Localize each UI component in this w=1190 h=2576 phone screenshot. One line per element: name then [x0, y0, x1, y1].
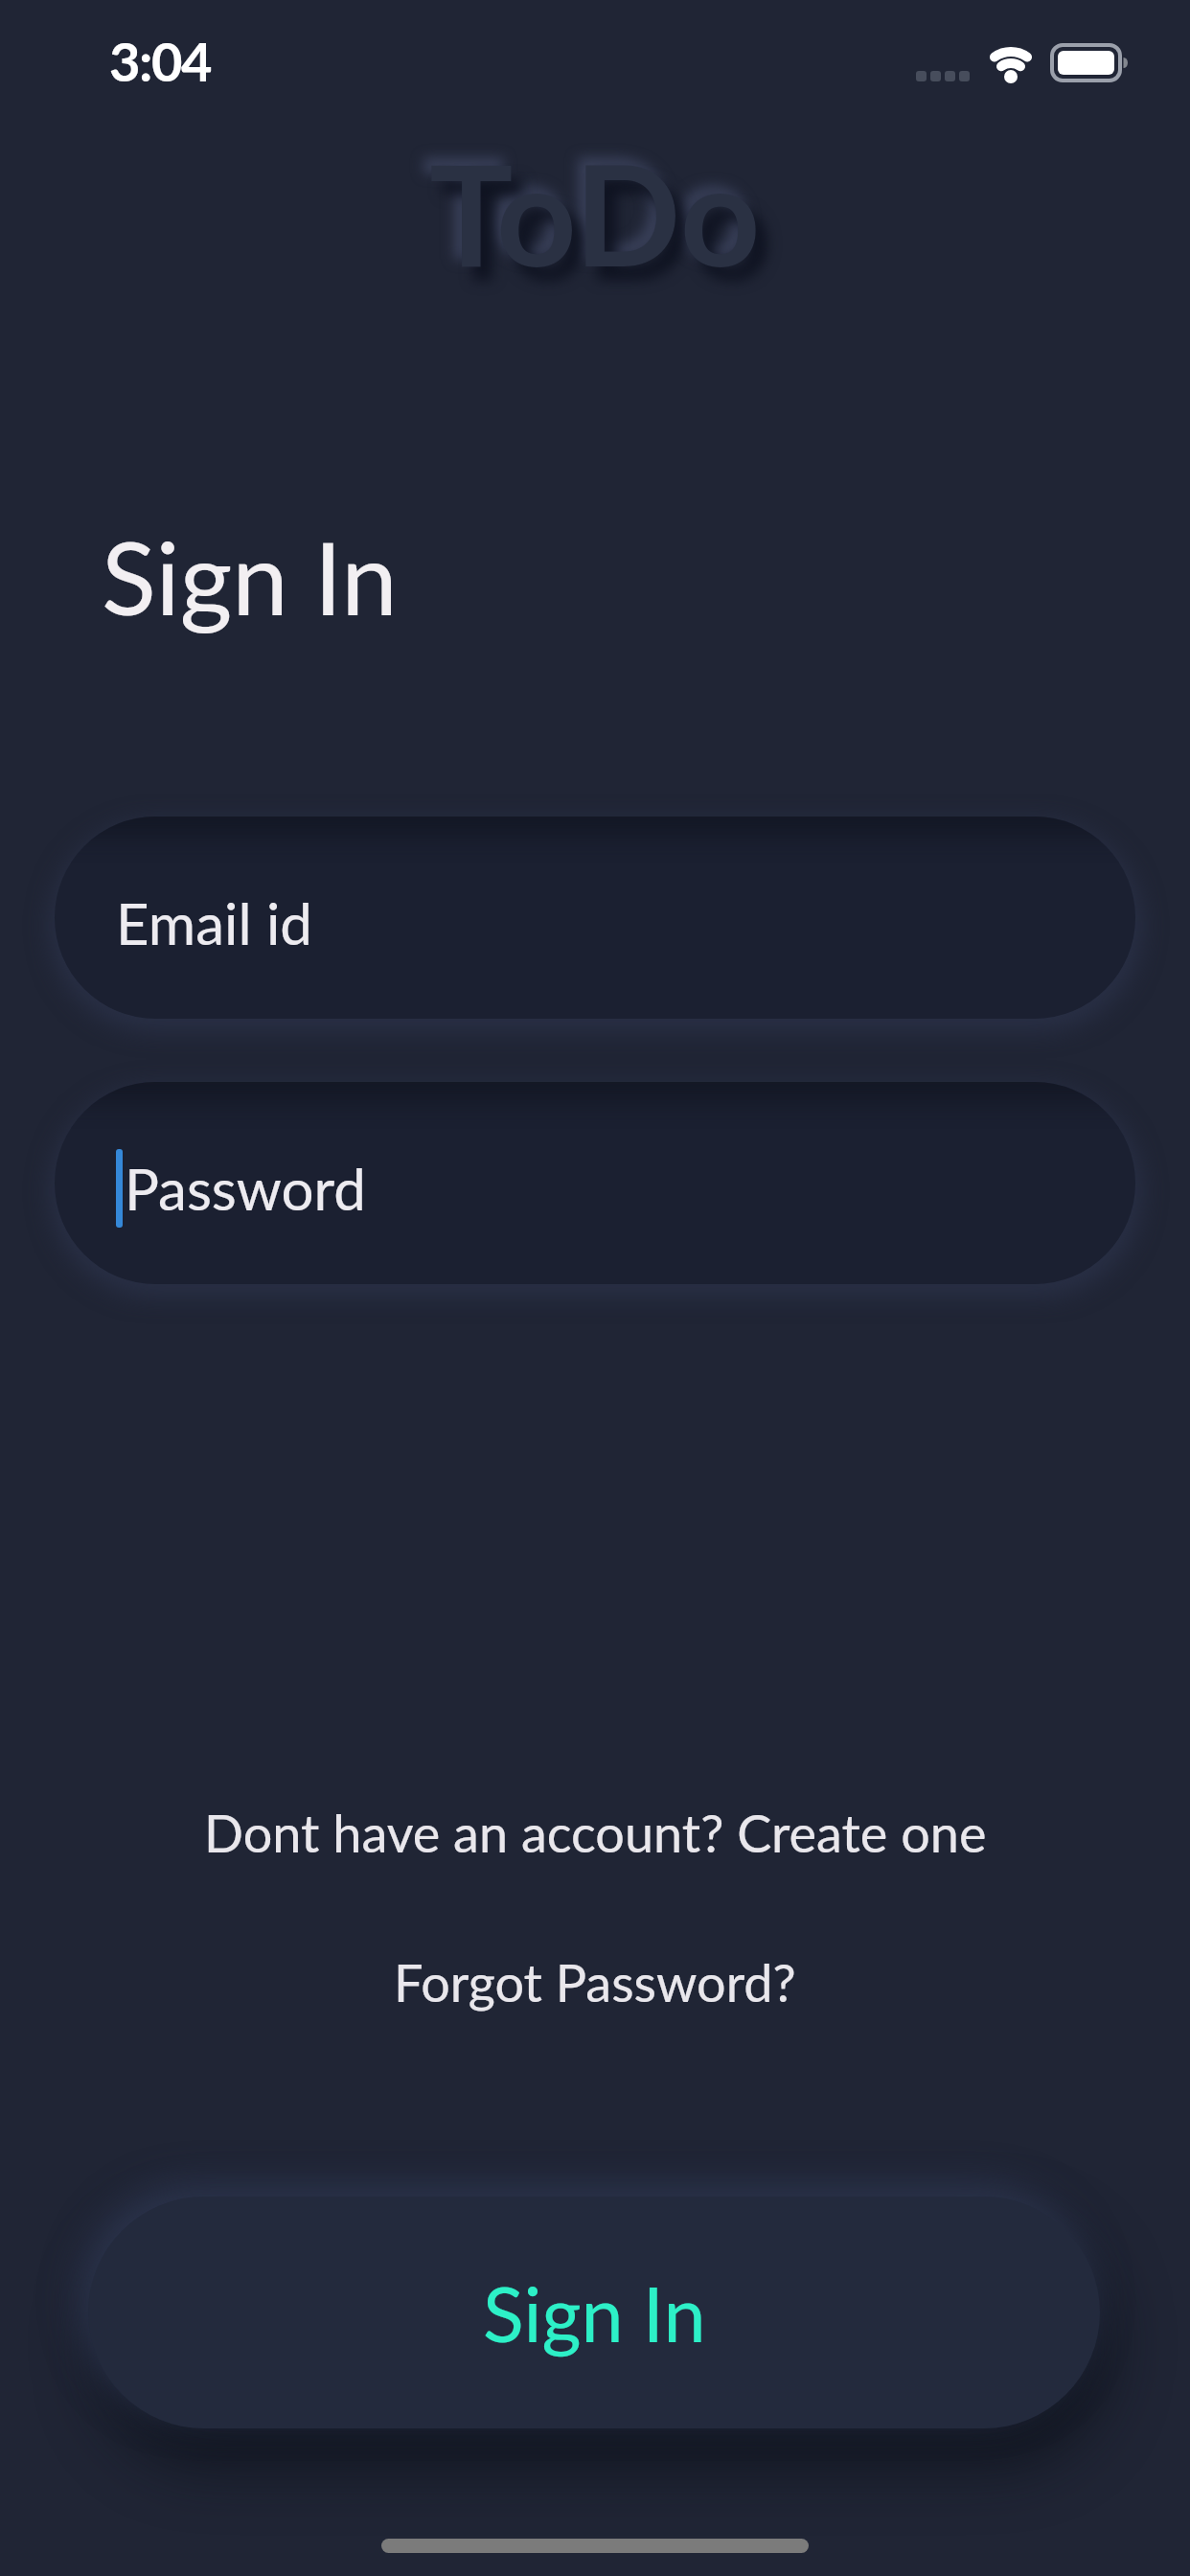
- button[interactable]: Dont have an account? Create one: [204, 1802, 987, 1864]
- staticText: Sign In: [483, 2267, 706, 2358]
- staticText: Email id: [116, 888, 312, 957]
- staticText: Sign In: [102, 516, 398, 636]
- staticText: Password: [125, 1154, 366, 1223]
- button[interactable]: Password: [55, 1082, 1135, 1284]
- staticText: 3:04: [109, 29, 211, 93]
- button[interactable]: Sign In: [88, 2196, 1100, 2428]
- button[interactable]: Forgot Password?: [394, 1951, 796, 2013]
- staticText: ToDo: [441, 142, 772, 310]
- staticText: ToDo: [429, 128, 761, 296]
- staticText: ToDo: [422, 121, 753, 288]
- button[interactable]: Email id: [55, 816, 1135, 1019]
